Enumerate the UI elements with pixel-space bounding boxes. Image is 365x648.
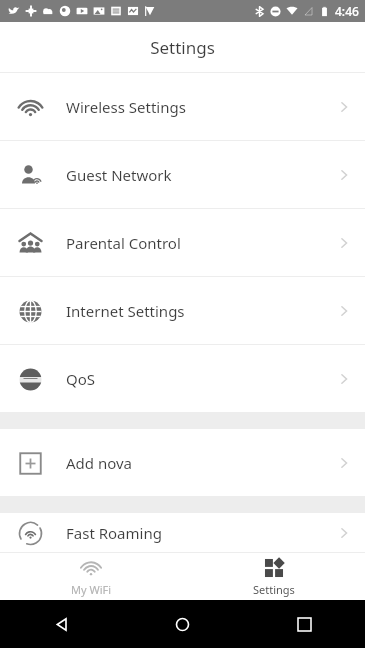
staticText: Internet Settings: [66, 301, 185, 321]
button[interactable]: Recents: [287, 607, 321, 641]
staticText: Wireless Settings: [66, 97, 186, 117]
button[interactable]: QoS: [0, 345, 365, 412]
staticText: 4:46: [335, 3, 359, 19]
staticText: Fast Roaming: [66, 523, 162, 543]
staticText: My WiFi: [71, 582, 112, 597]
button[interactable]: My WiFi: [0, 553, 182, 600]
staticText: Parental Control: [66, 233, 181, 253]
button[interactable]: Home: [165, 607, 199, 641]
button[interactable]: Wireless Settings: [0, 73, 365, 140]
button[interactable]: Fast Roaming: [0, 513, 365, 552]
staticText: QoS: [66, 369, 96, 389]
button[interactable]: Guest Network: [0, 141, 365, 208]
button[interactable]: Back: [44, 607, 78, 641]
staticText: Guest Network: [66, 165, 172, 185]
button[interactable]: Parental Control: [0, 209, 365, 276]
button[interactable]: Settings: [182, 553, 365, 600]
staticText: Add nova: [66, 453, 133, 473]
staticText: Settings: [253, 582, 295, 597]
button[interactable]: Internet Settings: [0, 277, 365, 344]
staticText: Settings: [150, 36, 215, 59]
button[interactable]: Add nova: [0, 429, 365, 496]
